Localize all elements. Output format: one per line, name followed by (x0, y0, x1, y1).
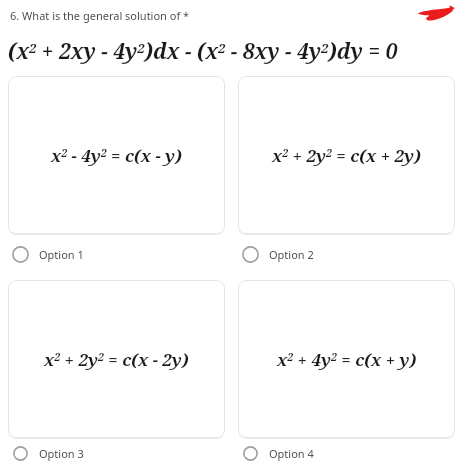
staticText: x2 + 2y2 = c(x + 2y) (272, 144, 421, 167)
button[interactable]: x2 + 2y2 = c(x + 2y) (238, 76, 455, 234)
staticText: Option 2 (269, 247, 314, 262)
staticText: Option 1 (39, 247, 84, 262)
button[interactable]: Option 4 (238, 446, 455, 461)
button[interactable]: x2 + 2y2 = c(x − 2y) (8, 280, 225, 438)
staticText: x2 + 4y2 = c(x + y) (277, 348, 417, 371)
button[interactable]: Option 1 (8, 242, 225, 266)
button[interactable]: x2 + 4y2 = c(x + y) (238, 280, 455, 438)
staticText: x2 + 2y2 = c(x − 2y) (44, 348, 189, 371)
staticText: (x2 + 2xy − 4y2)dx − (x2 − 8xy − 4y2)dy … (8, 37, 398, 66)
button[interactable]: Option 3 (8, 446, 225, 461)
button[interactable]: x2 − 4y2 = c(x − y) (8, 76, 225, 234)
other: Marking (417, 6, 455, 24)
staticText: 6. What is the general solution of * (10, 8, 190, 23)
staticText: x2 − 4y2 = c(x − y) (51, 144, 182, 167)
staticText: Option 4 (269, 446, 314, 461)
staticText: Option 3 (39, 446, 84, 461)
button[interactable]: Option 2 (238, 242, 455, 266)
